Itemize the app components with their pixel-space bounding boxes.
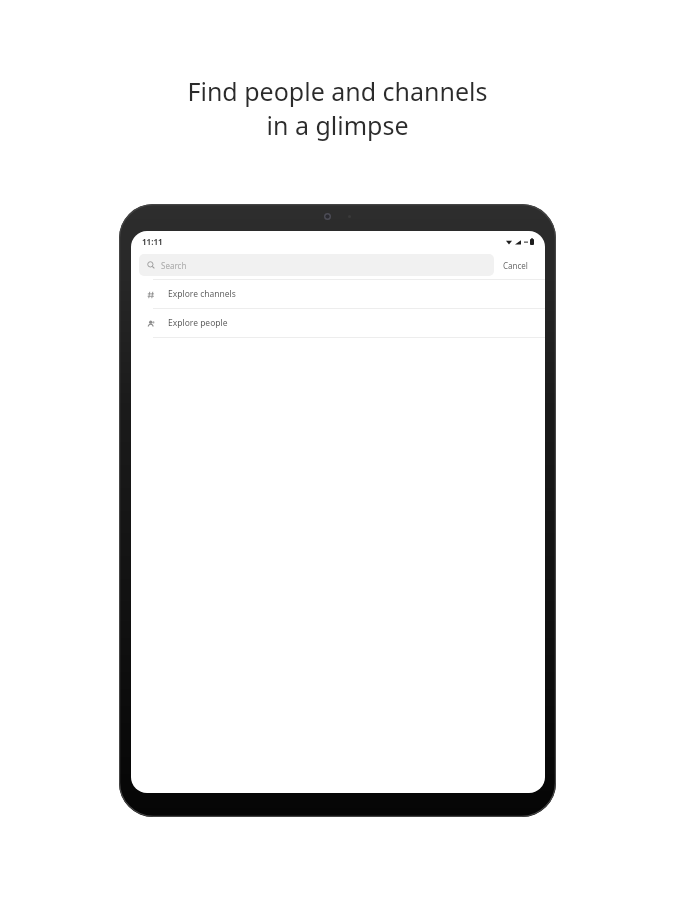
staticText: Find people and channels xyxy=(187,74,488,108)
button[interactable]: Search xyxy=(139,254,494,276)
button[interactable]: Cancel xyxy=(494,256,537,275)
other: Channels xyxy=(147,291,155,299)
staticText: Cancel xyxy=(503,260,528,271)
button[interactable]: People xyxy=(131,309,545,337)
other: People xyxy=(147,320,155,328)
button[interactable]: Channels xyxy=(131,280,545,308)
staticText: Search xyxy=(161,260,187,271)
staticText: Explore channels xyxy=(168,288,236,300)
staticText: in a glimpse xyxy=(266,108,409,142)
other: Search xyxy=(147,261,155,269)
staticText: Explore people xyxy=(168,317,228,329)
staticText: 11:11 xyxy=(142,236,163,247)
